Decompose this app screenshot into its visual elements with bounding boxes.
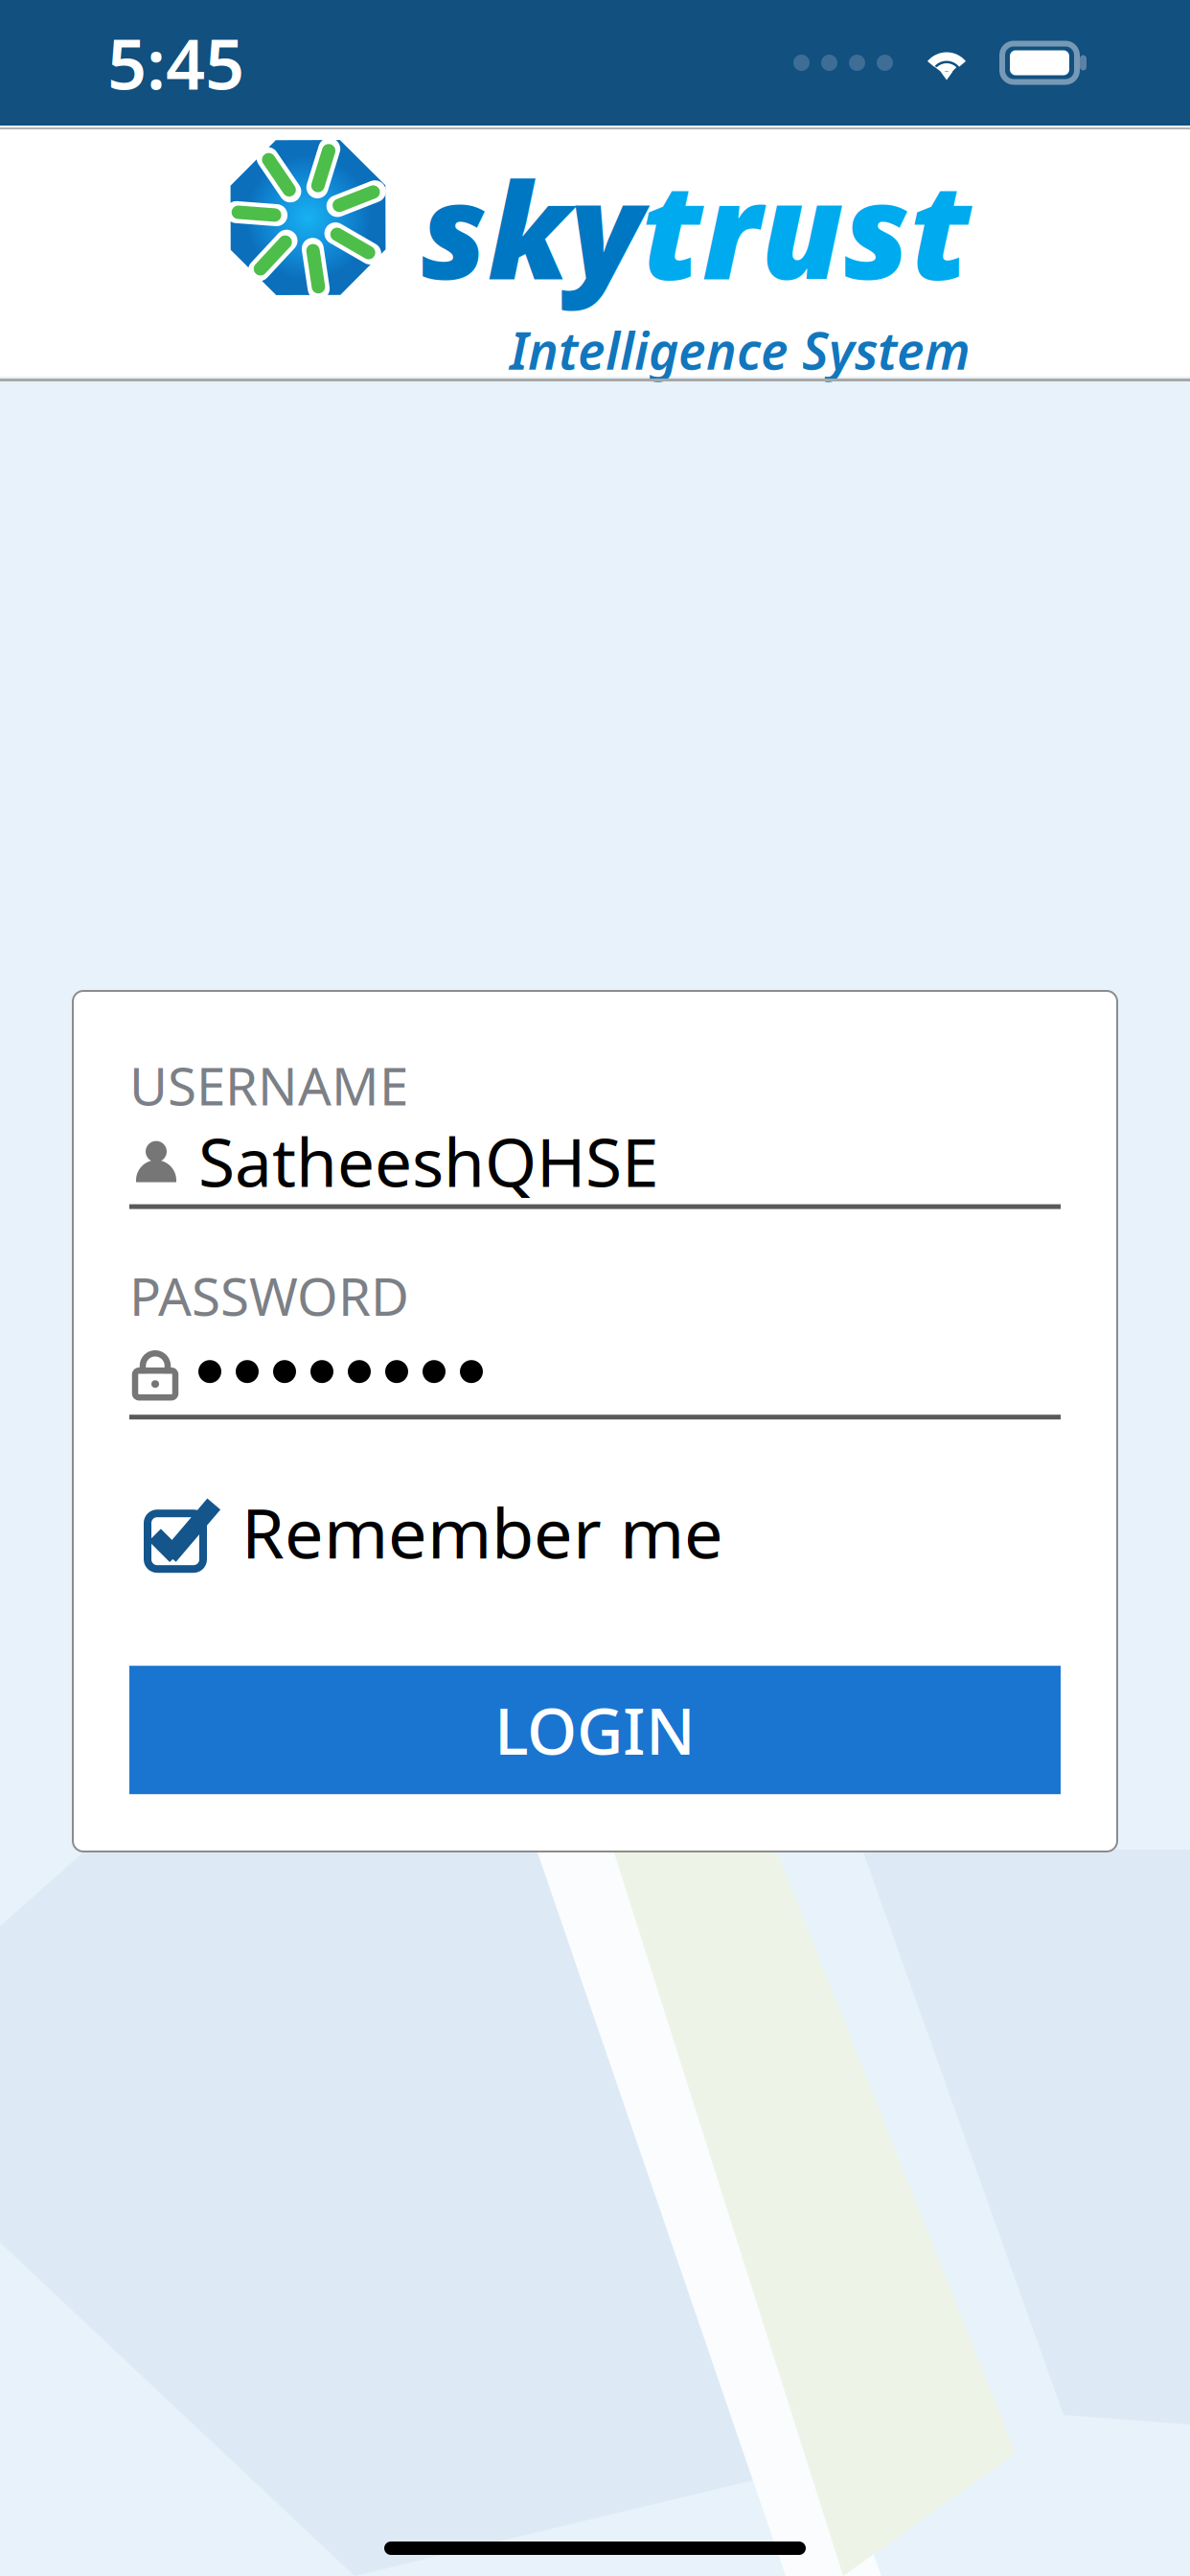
staticText: USERNAME (129, 1050, 408, 1120)
staticText: PASSWORD (129, 1261, 409, 1330)
button[interactable]: LOGIN (129, 1666, 1061, 1794)
staticText: Remember me (241, 1486, 723, 1577)
staticText: trust (642, 139, 971, 316)
button[interactable]: Remember me (129, 1473, 1061, 1554)
staticText: LOGIN (494, 1688, 696, 1772)
staticText: Intelligence System (510, 316, 971, 384)
staticText: sky (421, 139, 642, 316)
staticText: 5:45 (107, 17, 244, 109)
staticText: SatheeshQHSE (198, 1117, 659, 1205)
